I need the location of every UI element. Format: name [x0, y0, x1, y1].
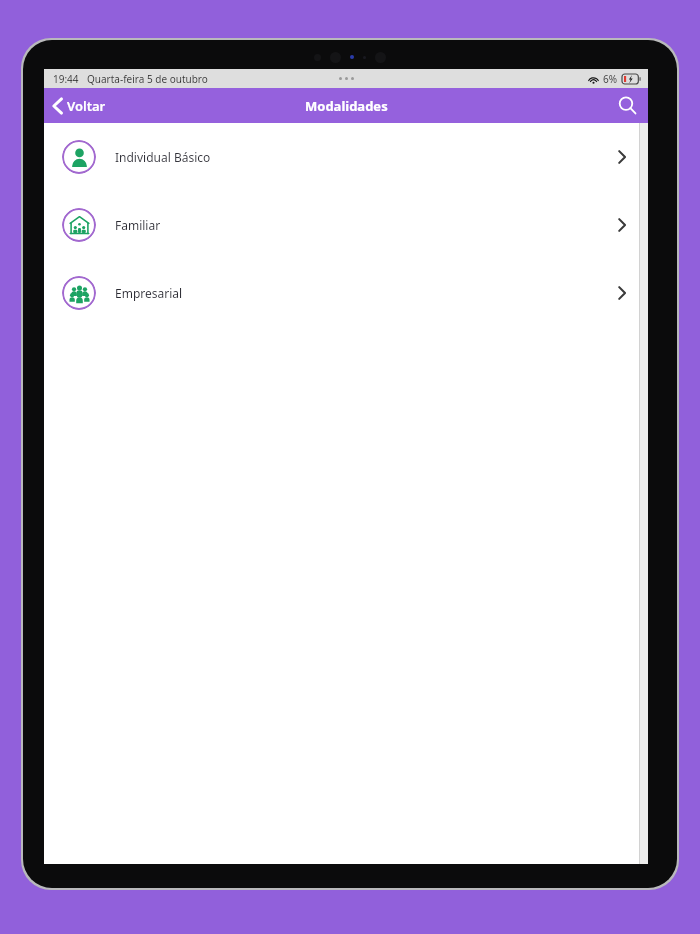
button[interactable]: Search — [607, 88, 648, 123]
staticText: Modalidades — [305, 97, 388, 115]
staticText: Empresarial — [115, 285, 618, 301]
button[interactable]: Familiar — [44, 191, 648, 259]
button[interactable]: Voltar — [44, 88, 116, 123]
button[interactable]: Empresarial — [44, 259, 648, 327]
staticText: 19:44 — [53, 72, 79, 86]
staticText: Quarta-feira 5 de outubro — [87, 72, 208, 86]
staticText: 6% — [603, 72, 618, 86]
staticText: Familiar — [115, 217, 618, 233]
staticText: Voltar — [67, 97, 106, 115]
staticText: Individual Básico — [115, 149, 618, 165]
button[interactable]: Individual Básico — [44, 123, 648, 191]
